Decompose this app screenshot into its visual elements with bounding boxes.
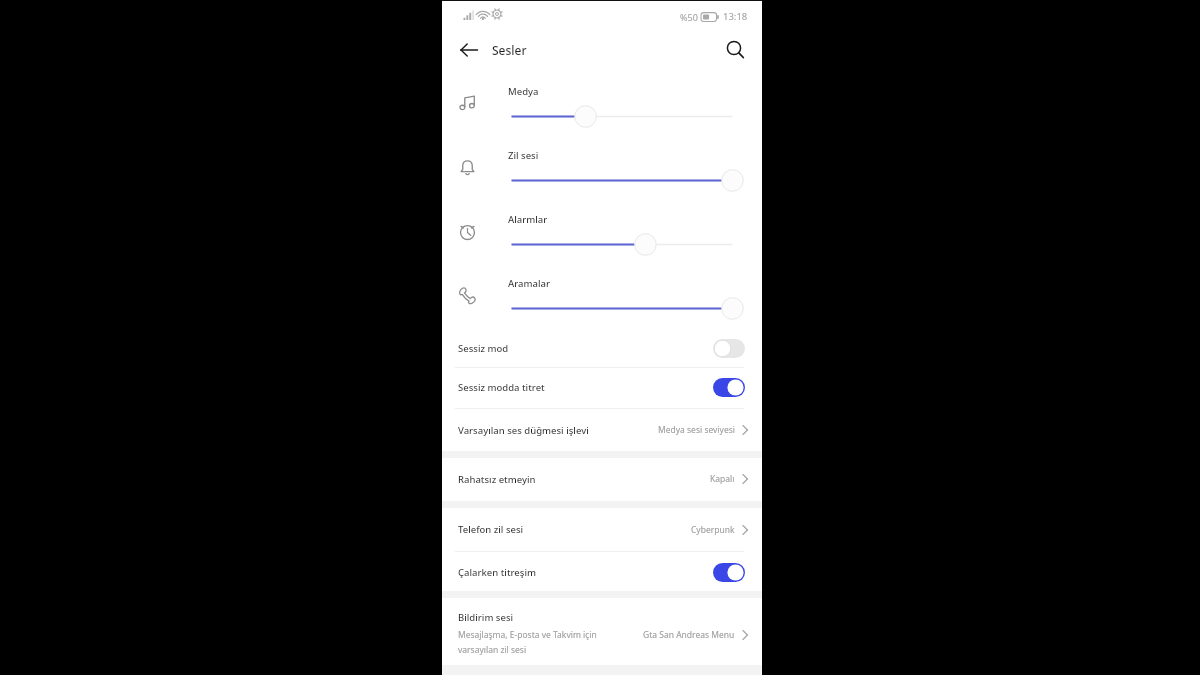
staticText: Rahatsız etmeyin [458, 473, 536, 486]
button[interactable]: Varsayılan ses düğmesi işlevi [442, 409, 762, 451]
staticText: Aramalar [508, 277, 550, 290]
staticText: Telefon zil sesi [458, 523, 524, 536]
staticText: Sessiz mod [458, 342, 509, 355]
staticText: %50 [680, 11, 698, 23]
button[interactable]: Çalarken titreşim [442, 551, 762, 594]
button[interactable]: Zil sesi [442, 136, 762, 200]
button[interactable]: Search [718, 32, 754, 68]
staticText: Alarmlar [508, 213, 548, 226]
staticText: varsayılan zil sesi [458, 644, 527, 656]
button[interactable]: Rahatsız etmeyin [442, 457, 762, 501]
staticText: Cyberpunk [691, 524, 735, 536]
button[interactable]: Back [451, 32, 487, 68]
button[interactable]: Medya [442, 72, 762, 136]
button[interactable]: Alarmlar [442, 200, 762, 264]
staticText: Medya sesi seviyesi [658, 424, 735, 436]
button[interactable]: Sessiz mod [442, 329, 762, 367]
staticText: Varsayılan ses düğmesi işlevi [458, 424, 589, 437]
staticText: Medya [508, 85, 539, 98]
staticText: Sesler [492, 42, 527, 58]
button[interactable]: Aramalar [442, 264, 762, 328]
staticText: 13:18 [723, 10, 748, 23]
staticText: Çalarken titreşim [458, 566, 536, 579]
button[interactable]: Bildirim sesi [442, 601, 762, 667]
staticText: Sessiz modda titret [458, 381, 545, 394]
staticText: Zil sesi [508, 149, 539, 162]
button[interactable]: Sessiz modda titret [442, 368, 762, 407]
staticText: Kapalı [710, 473, 735, 485]
staticText: Mesajlaşma, E-posta ve Takvim için [458, 629, 597, 641]
button[interactable]: Telefon zil sesi [442, 508, 762, 551]
staticText: Gta San Andreas Menu [643, 629, 735, 641]
staticText: Bildirim sesi [458, 611, 514, 624]
